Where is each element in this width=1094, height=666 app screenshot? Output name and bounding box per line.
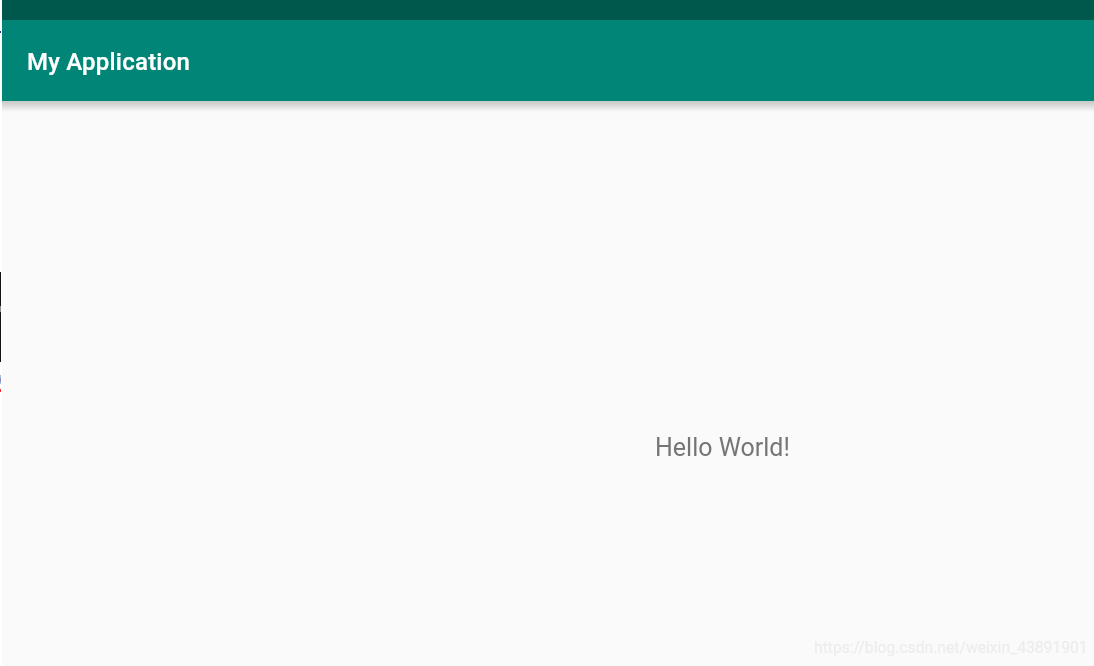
staticText: My Application	[27, 48, 191, 76]
staticText: Hello World!	[655, 433, 790, 462]
staticText: https://blog.csdn.net/weixin_43891901	[814, 638, 1088, 656]
button[interactable]: My Application	[27, 48, 191, 76]
